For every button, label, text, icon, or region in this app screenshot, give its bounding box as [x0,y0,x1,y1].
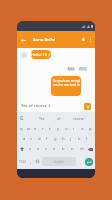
staticText: g [54,136,57,142]
staticText: z [29,146,31,152]
staticText: May [68,67,74,71]
staticText: of [57,116,61,121]
staticText: course [73,116,85,121]
staticText: o [81,126,84,132]
staticText: k [78,136,81,142]
staticText: 20:11 [79,67,87,71]
button[interactable]: h [59,134,67,144]
staticText: English [54,160,64,164]
button[interactable]: Video call [80,34,86,45]
staticText: w [27,126,31,132]
button[interactable]: Emoji [34,154,41,169]
staticText: j [70,136,72,142]
staticText: m [80,146,84,152]
button[interactable]: Space [42,157,76,166]
button[interactable]: y [54,124,62,134]
staticText: v [53,146,56,152]
staticText: e [34,126,37,132]
staticText: , [30,159,32,165]
button[interactable]: v [50,144,59,154]
button[interactable]: e [32,124,39,134]
button[interactable]: Back [18,35,28,45]
staticText: b [62,146,65,152]
button[interactable]: , [28,154,34,169]
button[interactable]: Enter [85,158,93,166]
button[interactable]: Shift [17,144,26,154]
staticText: Yes [39,116,45,121]
button[interactable]: . [77,154,85,169]
staticText: h [62,136,65,142]
button[interactable]: More options [86,35,94,44]
button[interactable]: k [75,134,83,144]
button[interactable]: o [78,124,86,134]
button[interactable]: r [39,124,46,134]
staticText: x [37,146,40,152]
staticText: s [30,136,33,142]
staticText: Anna Bellsi [33,37,56,43]
staticText: a [23,136,26,142]
staticText: Hello! Hi ;) [31,52,51,57]
button[interactable]: Backspace [86,144,95,154]
button[interactable]: f [43,134,51,144]
button[interactable]: s [28,134,35,144]
button[interactable]: x [34,144,42,154]
button[interactable]: g [51,134,59,144]
button[interactable]: c [42,144,50,154]
button[interactable]: Hello! Hi ;) [31,50,51,59]
staticText: c [45,146,48,152]
button[interactable]: u [62,124,70,134]
button[interactable]: Send [84,103,91,110]
staticText: . [80,159,82,165]
button[interactable]: t [46,124,54,134]
button[interactable]: ?123 [17,154,28,169]
staticText: q [20,126,23,132]
button[interactable]: z [26,144,34,154]
button[interactable]: p [86,124,94,134]
staticText: u [65,126,68,132]
staticText: f [46,136,48,142]
staticText: r [42,126,44,132]
button[interactable]: m [77,144,86,154]
staticText: n [71,146,74,152]
button[interactable]: a [21,134,28,144]
button[interactable]: i [70,124,78,134]
staticText: d [38,136,41,142]
staticText: G [20,115,24,121]
button[interactable]: Do you have enough to reach a new level … [51,76,81,96]
button[interactable]: d [35,134,43,144]
button[interactable]: j [67,134,75,144]
staticText: i [73,126,75,132]
staticText: ?123 [19,160,26,164]
button[interactable]: w [25,124,32,134]
staticText: Do you have enough to reach a new level … [53,79,80,87]
button[interactable]: May [67,67,75,71]
button[interactable]: q [18,124,25,134]
staticText: l [86,136,88,142]
staticText: y [57,126,60,132]
button[interactable]: n [68,144,77,154]
staticText: p [89,126,92,132]
button[interactable]: b [59,144,68,154]
button[interactable]: l [83,134,91,144]
staticText: Yes of course :) [21,103,51,109]
button[interactable]: 20:11 [79,67,87,71]
staticText: t [49,126,51,132]
button[interactable]: Google [19,115,25,121]
